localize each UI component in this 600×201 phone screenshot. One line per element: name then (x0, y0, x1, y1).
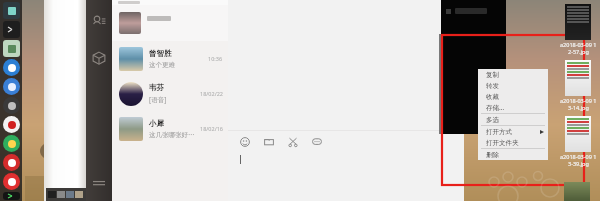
staticText: 删除 (486, 151, 499, 159)
button[interactable]: Dock app (3, 78, 20, 95)
staticText: 3-39.jpg (568, 160, 589, 167)
button[interactable]: 打开方式 (478, 126, 548, 137)
button[interactable]: Dock app (3, 192, 20, 200)
button[interactable]: 复制 (478, 69, 548, 80)
staticText: 复制 (486, 71, 499, 79)
button[interactable]: Dock app (3, 154, 20, 171)
button[interactable]: Files (262, 135, 276, 149)
button[interactable]: Dock app (3, 173, 20, 190)
button[interactable] (112, 5, 228, 41)
staticText: 10:36 (208, 55, 223, 62)
staticText: 转发 (486, 82, 499, 90)
button[interactable]: 存储… (478, 102, 548, 113)
button[interactable]: Dock app (3, 40, 20, 57)
button[interactable]: 多选 (478, 114, 548, 125)
staticText: a2018-03-09 1 (560, 41, 597, 48)
button[interactable]: Dock app (3, 2, 20, 19)
staticText: 打开文件夹 (486, 139, 519, 147)
staticText: 小犀 (149, 119, 164, 128)
staticText: 18/02/22 (200, 90, 223, 97)
button[interactable]: 小犀 (112, 111, 228, 146)
button[interactable]: Emoji (238, 135, 252, 149)
staticText: 多选 (486, 116, 499, 124)
staticText: 这几张哪张好看点? (149, 131, 200, 139)
staticText: 2-57.jpg (568, 48, 589, 55)
staticText: 3-14.jpg (568, 104, 589, 111)
button[interactable]: Contacts (87, 10, 111, 34)
button[interactable]: 删除 (478, 149, 548, 160)
button[interactable]: Dock app (3, 116, 20, 133)
button[interactable] (565, 116, 591, 152)
button[interactable]: 曾智胜 (112, 41, 228, 76)
button[interactable]: 打开文件夹 (478, 137, 548, 148)
button[interactable]: Dock app (3, 59, 20, 76)
staticText: 韦芬 (149, 83, 164, 92)
staticText: a2018-03-09 1 (560, 97, 597, 104)
button[interactable]: Screenshot (286, 135, 300, 149)
staticText: 曾智胜 (149, 49, 172, 58)
staticText: 存储… (486, 103, 505, 112)
staticText: 18/02/16 (200, 125, 223, 132)
staticText: 这个更难 (149, 61, 175, 69)
button[interactable]: Dock app (3, 97, 20, 114)
button[interactable]: More (87, 171, 111, 195)
button[interactable]: Mini programs (87, 46, 111, 70)
button[interactable]: 收藏 (478, 91, 548, 102)
staticText: [语音] (149, 95, 167, 104)
button[interactable]: Dock app (3, 21, 20, 38)
staticText: 收藏 (486, 93, 499, 101)
button[interactable]: 韦芬 (112, 76, 228, 111)
button[interactable]: Dock app (3, 135, 20, 152)
button[interactable] (565, 4, 591, 40)
button[interactable] (565, 60, 591, 96)
staticText: 打开方式 (486, 128, 512, 136)
button[interactable]: 转发 (478, 80, 548, 91)
staticText: a2018-03-09 1 (560, 153, 597, 160)
button[interactable]: Chat history (310, 135, 324, 149)
